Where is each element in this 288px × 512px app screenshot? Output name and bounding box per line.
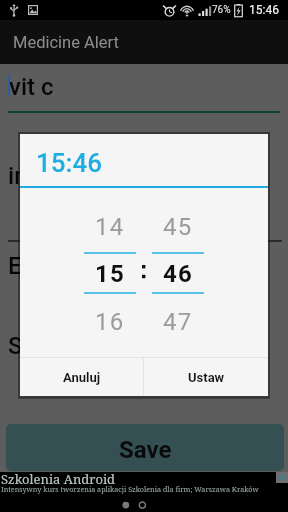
- staticText: 16: [95, 308, 125, 334]
- staticText: Start: [8, 332, 61, 360]
- staticText: 15:46: [249, 3, 279, 17]
- staticText: 45: [163, 213, 193, 239]
- staticText: 15:46: [36, 148, 103, 178]
- staticText: interval: [8, 162, 88, 190]
- staticText: 15: [95, 260, 125, 286]
- button[interactable]: 14: [84, 213, 136, 239]
- button[interactable]: Anuluj: [20, 358, 143, 396]
- staticText: 46: [163, 260, 193, 286]
- staticText: 47: [163, 308, 193, 334]
- staticText: Intensywny kurs tworzenia aplikacji Szko…: [1, 484, 259, 494]
- button[interactable]: Szkolenia Android: [0, 472, 288, 512]
- staticText: 76%: [212, 4, 231, 16]
- button[interactable]: 16: [84, 308, 136, 334]
- button[interactable]: Ustaw: [144, 358, 268, 396]
- staticText: 14: [95, 213, 125, 239]
- staticText: Every: [8, 252, 67, 280]
- staticText: Save: [119, 436, 172, 464]
- button[interactable]: 46: [152, 260, 204, 286]
- staticText: Anuluj: [63, 370, 101, 385]
- button[interactable]: 15: [84, 260, 136, 286]
- staticText: Medicine Alert: [13, 33, 119, 52]
- staticText: vit c: [9, 73, 54, 101]
- staticText: Ustaw: [188, 370, 225, 385]
- button[interactable]: 45: [152, 213, 204, 239]
- button[interactable]: Save: [6, 424, 284, 471]
- button[interactable]: 47: [152, 308, 204, 334]
- staticText: Szkolenia Android: [1, 470, 116, 488]
- button[interactable]: Close ad: [276, 472, 288, 483]
